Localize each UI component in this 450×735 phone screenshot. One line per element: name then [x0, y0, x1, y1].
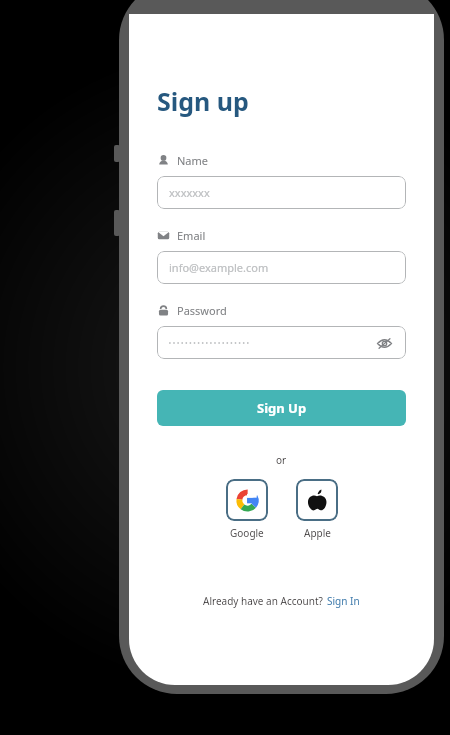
staticText: xxxxxxx — [169, 185, 210, 200]
staticText: or — [276, 453, 287, 467]
staticText: Sign up — [157, 84, 249, 118]
staticText: Email — [177, 228, 206, 243]
button[interactable]: Sign up with Google — [226, 479, 268, 521]
staticText: Google — [230, 526, 264, 540]
button[interactable]: Sign In — [327, 594, 360, 608]
staticText: Name — [177, 153, 209, 168]
staticText: Password — [177, 303, 227, 318]
staticText: Apple — [304, 526, 331, 540]
staticText: info@example.com — [169, 260, 269, 275]
staticText: Sign Up — [257, 399, 307, 417]
button[interactable]: Sign up with Apple — [296, 479, 338, 521]
staticText: Already have an Account? — [203, 594, 323, 608]
button[interactable]: info@example.com — [157, 251, 406, 284]
staticText: Sign In — [327, 594, 360, 608]
button[interactable]: Sign Up — [157, 390, 406, 426]
button[interactable]: Show password — [157, 326, 406, 359]
button[interactable]: Show password — [374, 333, 394, 353]
button[interactable]: xxxxxxx — [157, 176, 406, 209]
